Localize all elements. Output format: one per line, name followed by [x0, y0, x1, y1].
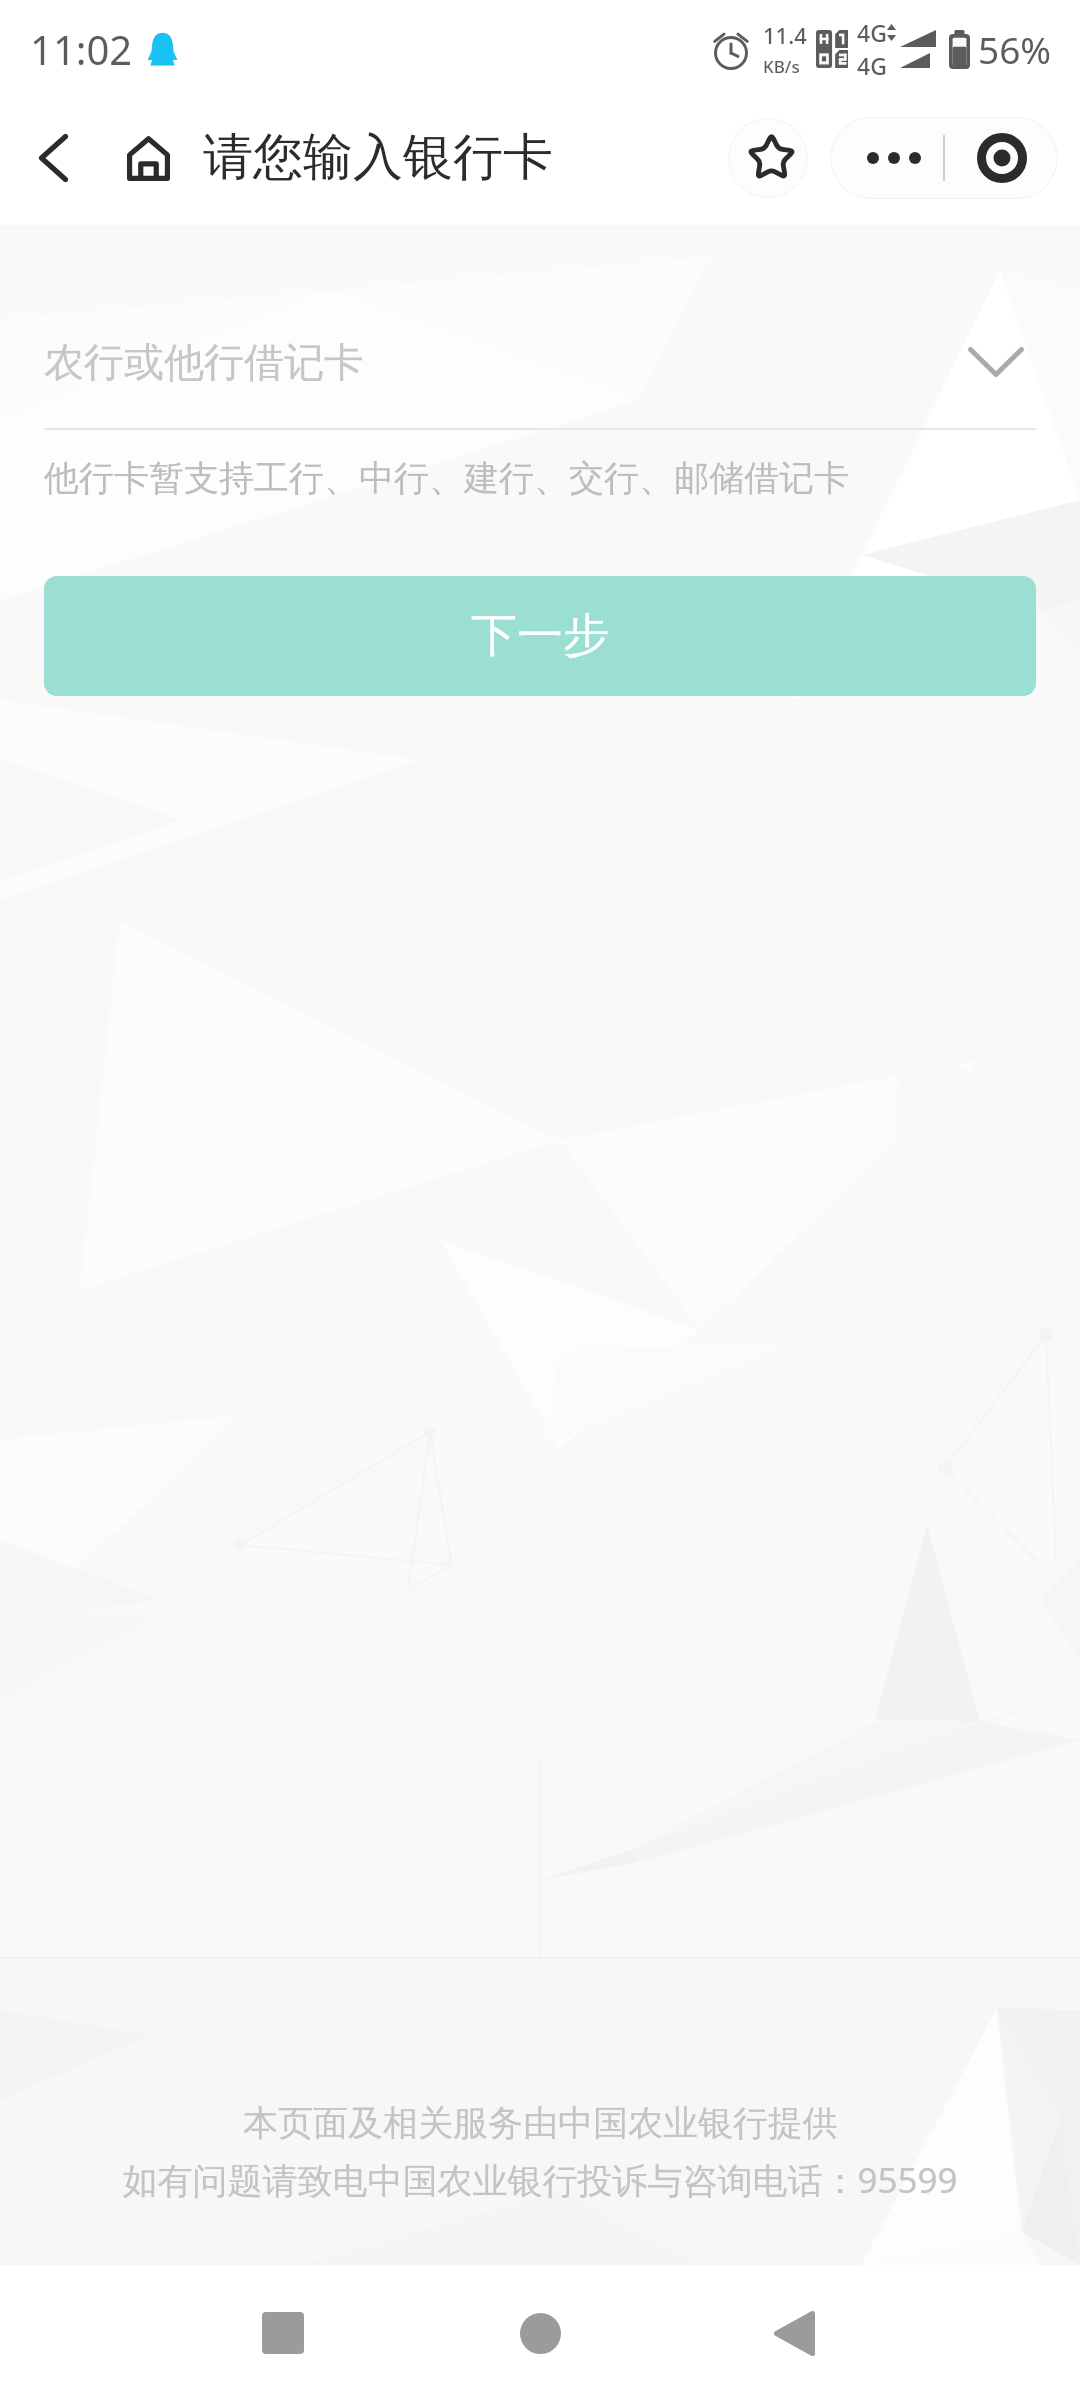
- staticText: 农行或他行借记卡: [44, 337, 364, 387]
- button[interactable]: 下一步: [44, 576, 1036, 696]
- button[interactable]: Favorite: [728, 118, 808, 198]
- button[interactable]: Home: [117, 113, 179, 203]
- staticText: KB/s: [763, 55, 800, 78]
- staticText: 56%: [978, 24, 1052, 74]
- button[interactable]: More options: [830, 117, 943, 199]
- button[interactable]: Recent apps: [228, 2278, 338, 2388]
- staticText: 他行卡暂支持工行、中行、建行、交行、邮储借记卡: [44, 456, 849, 500]
- button[interactable]: Back: [742, 2278, 852, 2388]
- staticText: 11:02: [30, 22, 133, 76]
- staticText: 本页面及相关服务由中国农业银行提供: [243, 2101, 838, 2145]
- button[interactable]: Close: [945, 117, 1058, 199]
- staticText: 4G: [857, 17, 887, 48]
- staticText: 11.4: [763, 20, 807, 50]
- button[interactable]: Home: [485, 2278, 595, 2388]
- staticText: 请您输入银行卡: [203, 126, 553, 189]
- staticText: 下一步: [471, 607, 609, 665]
- button[interactable]: 农行或他行借记卡: [44, 308, 1036, 416]
- staticText: 4G: [857, 50, 887, 81]
- staticText: 如有问题请致电中国农业银行投诉与咨询电话：95599: [122, 2156, 958, 2204]
- button[interactable]: Back: [22, 113, 84, 203]
